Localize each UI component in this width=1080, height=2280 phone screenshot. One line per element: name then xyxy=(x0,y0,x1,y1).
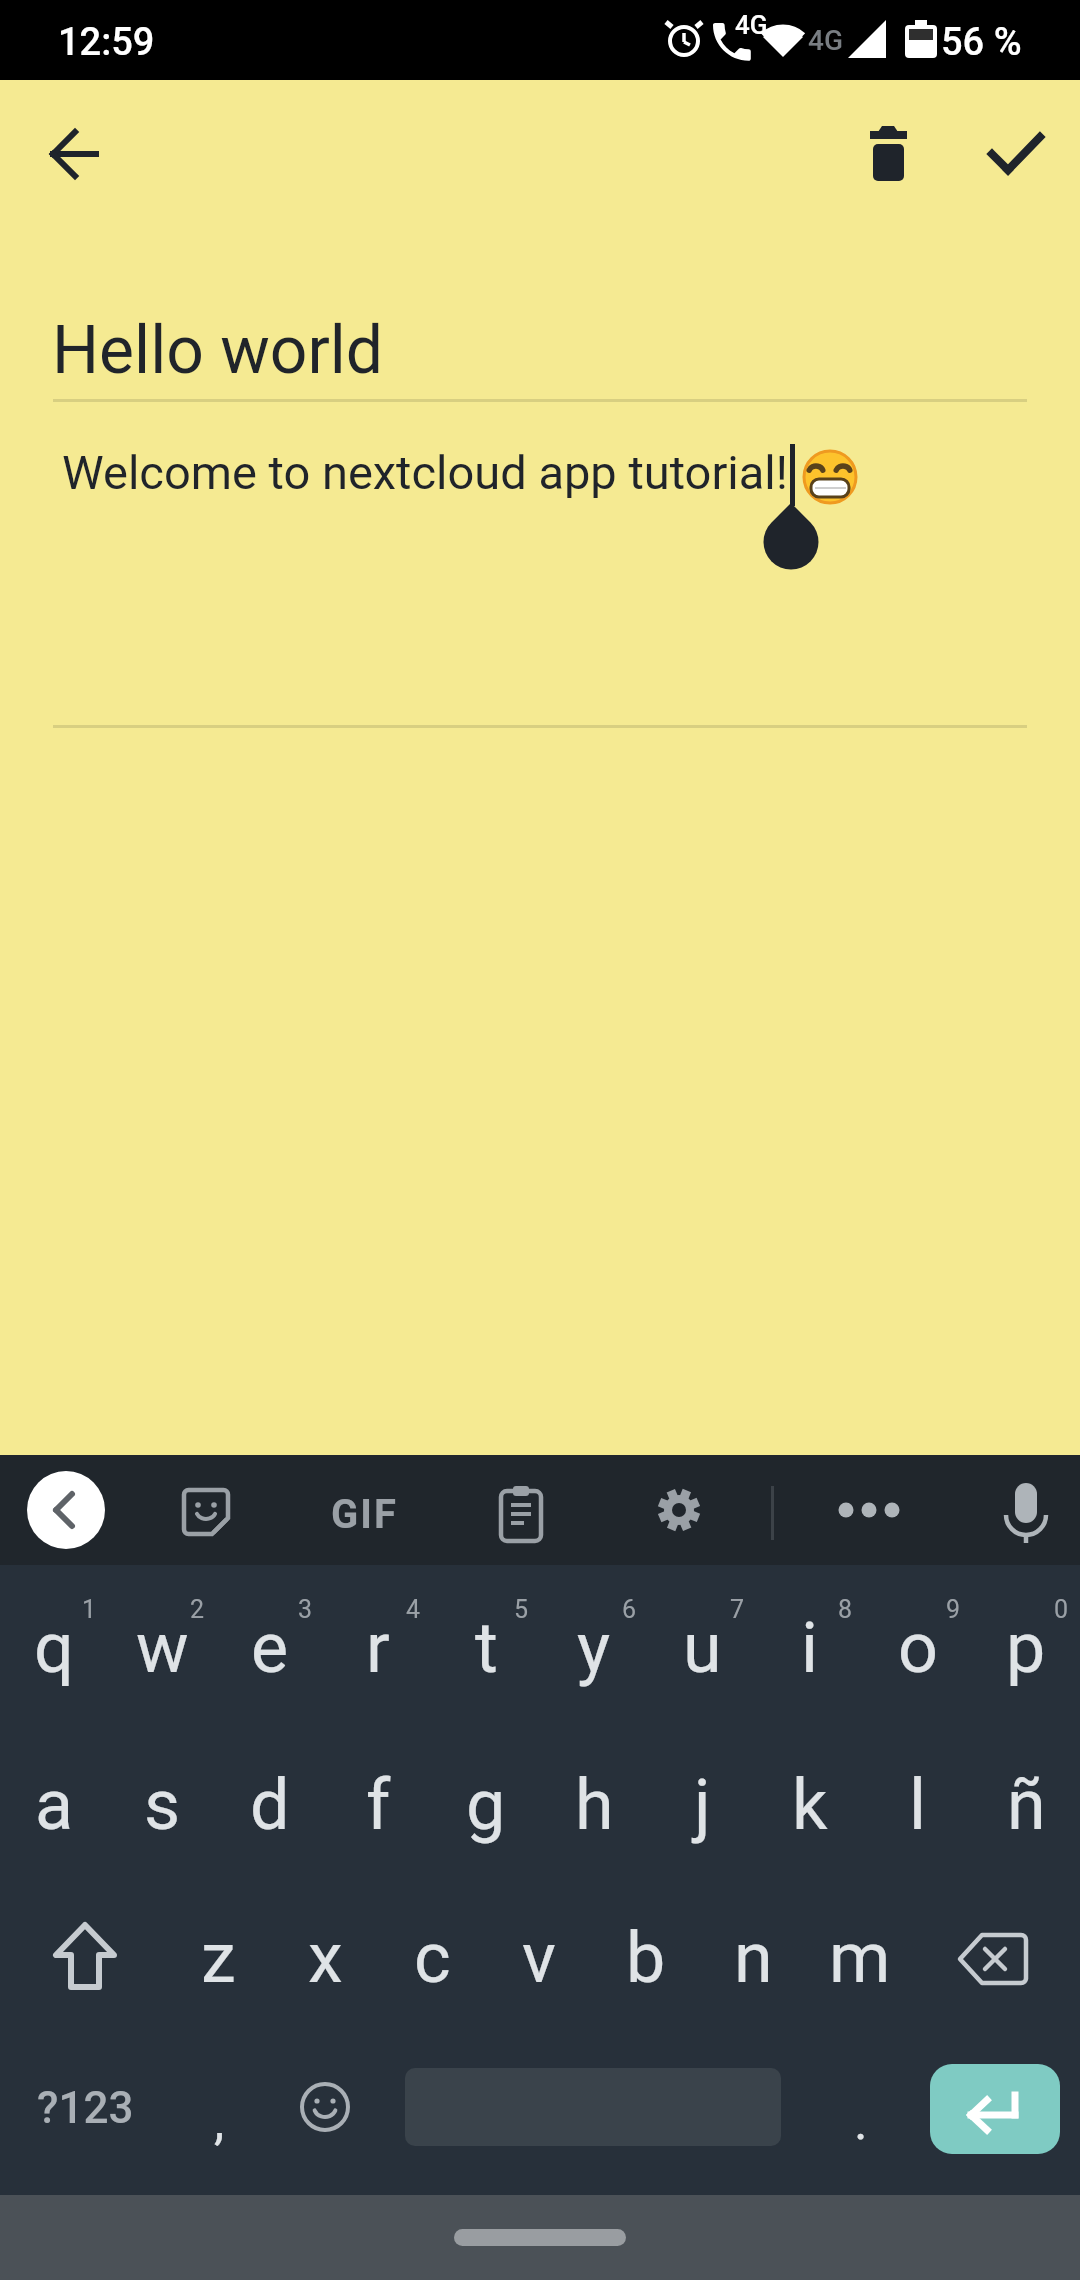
button[interactable]: y xyxy=(541,1573,647,1723)
button[interactable]: ?123 xyxy=(15,2068,155,2148)
staticText: 6 xyxy=(622,1595,637,1624)
button[interactable] xyxy=(835,1499,905,1521)
staticText: ?123 xyxy=(37,2082,134,2134)
staticText: 0 xyxy=(1054,1595,1069,1624)
button[interactable]: . xyxy=(808,2046,914,2196)
staticText: c xyxy=(414,1917,451,1999)
button[interactable]: l xyxy=(865,1730,971,1880)
button[interactable] xyxy=(30,1917,140,2001)
staticText: k xyxy=(792,1764,828,1846)
button[interactable]: ñ xyxy=(973,1730,1079,1880)
button[interactable]: n xyxy=(700,1883,806,2033)
staticText: Welcome to nextcloud app tutorial! xyxy=(62,445,788,500)
staticText: Hello world xyxy=(52,312,384,389)
staticText: 56 % xyxy=(941,20,1022,65)
button[interactable]: s xyxy=(109,1730,215,1880)
button[interactable]: f xyxy=(325,1730,431,1880)
staticText: 8 xyxy=(838,1595,853,1624)
staticText: a xyxy=(35,1764,74,1846)
staticText: y xyxy=(577,1607,611,1689)
staticText: b xyxy=(626,1917,666,1999)
staticText: i xyxy=(801,1607,819,1689)
button[interactable] xyxy=(950,1931,1036,1993)
button[interactable]: j xyxy=(649,1730,755,1880)
button[interactable] xyxy=(930,2064,1060,2154)
staticText: w xyxy=(136,1607,189,1689)
button[interactable] xyxy=(498,1485,544,1543)
staticText: m xyxy=(829,1917,891,1999)
staticText: o xyxy=(898,1607,938,1689)
staticText: , xyxy=(214,2091,225,2152)
staticText: 5 xyxy=(514,1595,529,1624)
staticText: h xyxy=(575,1764,614,1846)
button[interactable]: o xyxy=(865,1573,971,1723)
button[interactable]: b xyxy=(593,1883,699,2033)
staticText: 4G xyxy=(735,10,768,40)
staticText: 7 xyxy=(730,1595,745,1624)
staticText: 9 xyxy=(946,1595,961,1624)
button[interactable]: k xyxy=(757,1730,863,1880)
button[interactable] xyxy=(852,120,924,192)
staticText: x xyxy=(308,1917,343,1999)
button[interactable]: x xyxy=(272,1883,378,2033)
staticText: 3 xyxy=(298,1595,313,1624)
button[interactable]: r xyxy=(325,1573,431,1723)
staticText: j xyxy=(694,1764,711,1846)
staticText: z xyxy=(201,1917,236,1999)
button[interactable]: v xyxy=(486,1883,592,2033)
staticText: . xyxy=(854,2091,868,2152)
staticText: g xyxy=(466,1764,506,1846)
button[interactable] xyxy=(299,2081,351,2133)
button[interactable]: d xyxy=(217,1730,323,1880)
button[interactable]: e xyxy=(217,1573,323,1723)
staticText: 2 xyxy=(190,1595,205,1624)
staticText: 4 xyxy=(406,1595,421,1624)
button[interactable] xyxy=(980,124,1048,180)
staticText: u xyxy=(683,1607,722,1689)
button[interactable]: q xyxy=(1,1573,107,1723)
staticText: n xyxy=(734,1917,773,1999)
button[interactable]: g xyxy=(433,1730,539,1880)
staticText: 1 xyxy=(82,1595,97,1624)
button[interactable]: c xyxy=(379,1883,485,2033)
staticText: p xyxy=(1006,1607,1046,1689)
staticText: l xyxy=(909,1764,927,1846)
button[interactable] xyxy=(656,1487,702,1533)
staticText: s xyxy=(144,1764,181,1846)
button[interactable]: GIF xyxy=(322,1491,406,1535)
button[interactable]: z xyxy=(165,1883,271,2033)
button[interactable]: w xyxy=(109,1573,215,1723)
staticText: f xyxy=(366,1764,391,1846)
button[interactable]: u xyxy=(649,1573,755,1723)
staticText: r xyxy=(366,1607,390,1689)
staticText: GIF xyxy=(331,1491,398,1535)
button[interactable]: m xyxy=(807,1883,913,2033)
button[interactable]: p xyxy=(973,1573,1079,1723)
button[interactable] xyxy=(183,1489,233,1539)
button[interactable]: a xyxy=(1,1730,107,1880)
staticText: v xyxy=(522,1917,556,1999)
staticText: 4G xyxy=(808,24,843,57)
staticText: ñ xyxy=(1007,1764,1046,1846)
button[interactable]: , xyxy=(166,2046,272,2196)
staticText: 12:59 xyxy=(58,20,155,65)
button[interactable]: h xyxy=(541,1730,647,1880)
button[interactable] xyxy=(27,1471,105,1549)
button[interactable]: i xyxy=(757,1573,863,1723)
staticText: t xyxy=(475,1607,498,1689)
staticText: d xyxy=(250,1764,290,1846)
staticText: q xyxy=(34,1607,74,1689)
button[interactable] xyxy=(1000,1481,1052,1547)
button[interactable] xyxy=(38,122,110,194)
button[interactable]: t xyxy=(433,1573,539,1723)
staticText: e xyxy=(251,1607,289,1689)
